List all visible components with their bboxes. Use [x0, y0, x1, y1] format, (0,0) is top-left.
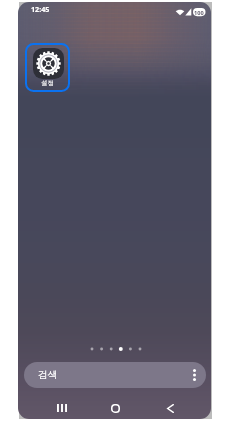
button[interactable]: More options [186, 362, 206, 388]
staticText: 검색 [38, 369, 58, 381]
button[interactable]: Back [147, 393, 189, 419]
button[interactable]: Recent apps [37, 393, 79, 419]
button[interactable]: 설정 [25, 43, 70, 92]
staticText: 설정 [41, 79, 54, 87]
staticText: 12:45 [31, 4, 50, 14]
button[interactable]: 검색 [24, 362, 206, 388]
button[interactable]: Home [91, 393, 133, 419]
staticText: 100 [194, 9, 204, 17]
